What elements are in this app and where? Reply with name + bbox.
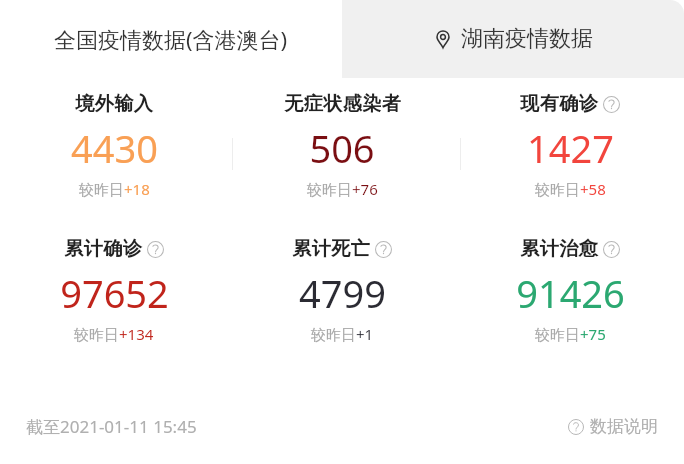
button[interactable]: 累计确诊 (0, 237, 228, 344)
button[interactable]: 境外输入 (0, 92, 228, 199)
staticText: 较昨日+1 (311, 324, 374, 344)
staticText: 累计确诊 (64, 237, 142, 261)
staticText: 较昨日+18 (79, 179, 150, 199)
staticText: 1427 (527, 122, 614, 174)
button[interactable]: 数据说明 (568, 416, 658, 437)
staticText: 数据说明 (590, 416, 658, 437)
button[interactable]: 湖南疫情数据 (342, 0, 684, 78)
staticText: 累计治愈 (520, 237, 598, 261)
staticText: 较昨日+76 (307, 179, 378, 199)
staticText: 截至2021-01-11 15:45 (26, 415, 197, 438)
button[interactable]: 无症状感染者 (228, 92, 456, 199)
button[interactable]: 现有确诊 (456, 92, 684, 199)
staticText: 91426 (516, 267, 625, 319)
staticText: 506 (309, 122, 375, 174)
staticText: 湖南疫情数据 (461, 25, 593, 53)
staticText: 全国疫情数据(含港澳台) (54, 24, 288, 54)
staticText: 较昨日+75 (535, 324, 606, 344)
button[interactable]: 累计治愈 (456, 237, 684, 344)
staticText: 较昨日+58 (535, 179, 606, 199)
staticText: 境外输入 (75, 92, 153, 116)
staticText: 4430 (71, 122, 158, 174)
button[interactable]: 累计死亡 (228, 237, 456, 344)
button[interactable]: 全国疫情数据(含港澳台) (0, 0, 342, 78)
staticText: 97652 (60, 267, 169, 319)
staticText: 无症状感染者 (284, 92, 401, 116)
staticText: 4799 (299, 267, 386, 319)
staticText: 累计死亡 (292, 237, 370, 261)
staticText: 较昨日+134 (74, 324, 154, 344)
staticText: 现有确诊 (520, 92, 598, 116)
